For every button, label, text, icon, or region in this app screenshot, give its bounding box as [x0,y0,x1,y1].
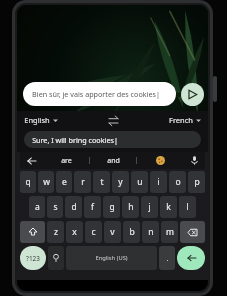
button[interactable]: are [44,152,89,169]
button[interactable]: k [160,196,177,218]
button[interactable]: Shift [20,221,45,243]
staticText: m [166,226,174,238]
button[interactable]: Enter [177,246,205,270]
button[interactable]: w [38,171,54,193]
button[interactable]: e [56,171,72,193]
button[interactable]: c [85,221,102,243]
staticText: h [128,201,134,213]
button[interactable]: v [104,221,121,243]
staticText: i [157,176,160,188]
button[interactable]: Backspace [180,221,205,243]
button[interactable]: and [90,152,136,169]
button[interactable]: z [47,221,64,243]
button[interactable]: t [93,171,110,193]
button[interactable]: English [24,115,58,125]
staticText: z [54,226,58,238]
button[interactable]: h [122,196,139,218]
staticText: y [118,176,123,188]
button[interactable]: Send [181,83,204,106]
staticText: u [137,176,143,188]
staticText: o [175,176,181,188]
staticText: q [25,176,31,188]
staticText: French [169,115,193,125]
button[interactable]: English (US) [66,246,157,270]
staticText: n [148,226,154,238]
button[interactable]: d [65,196,82,218]
staticText: l [186,201,189,213]
button[interactable]: p [188,171,205,193]
button[interactable]: a [29,196,45,218]
staticText: s [53,201,58,213]
button[interactable]: Emoji [137,152,183,169]
button[interactable]: Emoji keyboard [48,246,64,270]
staticText: English [24,115,50,125]
staticText: a [35,201,40,213]
button[interactable]: q [20,171,36,193]
staticText: b [129,226,135,238]
button[interactable]: Back [20,152,44,169]
staticText: t [100,176,104,188]
staticText: g [109,201,115,213]
staticText: w [43,176,50,188]
staticText: and [107,156,120,166]
staticText: v [110,226,115,238]
staticText: are [61,156,72,166]
staticText: p [194,176,200,188]
button[interactable]: o [169,171,186,193]
button[interactable]: ?123 [20,246,46,270]
staticText: . [166,253,169,263]
button[interactable]: j [141,196,158,218]
staticText: c [91,226,96,238]
button[interactable]: n [142,221,159,243]
staticText: x [72,226,77,238]
button[interactable]: i [150,171,167,193]
staticText: e [62,176,67,188]
staticText: j [148,201,151,213]
button[interactable]: r [74,171,91,193]
button[interactable]: Swap languages [106,113,120,127]
button[interactable]: y [112,171,129,193]
button[interactable]: Voice input [183,152,205,169]
staticText: Bien sûr, je vais apporter des cookies| [32,89,160,99]
button[interactable]: . [159,246,175,270]
button[interactable]: Sure, I will bring cookies| [24,131,201,148]
button[interactable]: Bien sûr, je vais apporter des cookies| [23,82,176,106]
button[interactable]: b [123,221,140,243]
button[interactable]: l [179,196,196,218]
staticText: r [81,176,85,188]
button[interactable]: French [169,115,201,125]
button[interactable]: g [103,196,120,218]
button[interactable]: u [131,171,148,193]
button[interactable]: f [84,196,101,218]
button[interactable]: m [161,221,178,243]
staticText: Sure, I will bring cookies| [32,135,118,145]
button[interactable]: x [66,221,83,243]
staticText: ?123 [26,254,40,263]
staticText: English (US) [95,254,128,262]
staticText: f [91,201,94,213]
button[interactable]: s [47,196,63,218]
staticText: k [166,201,171,213]
staticText: d [71,201,77,213]
